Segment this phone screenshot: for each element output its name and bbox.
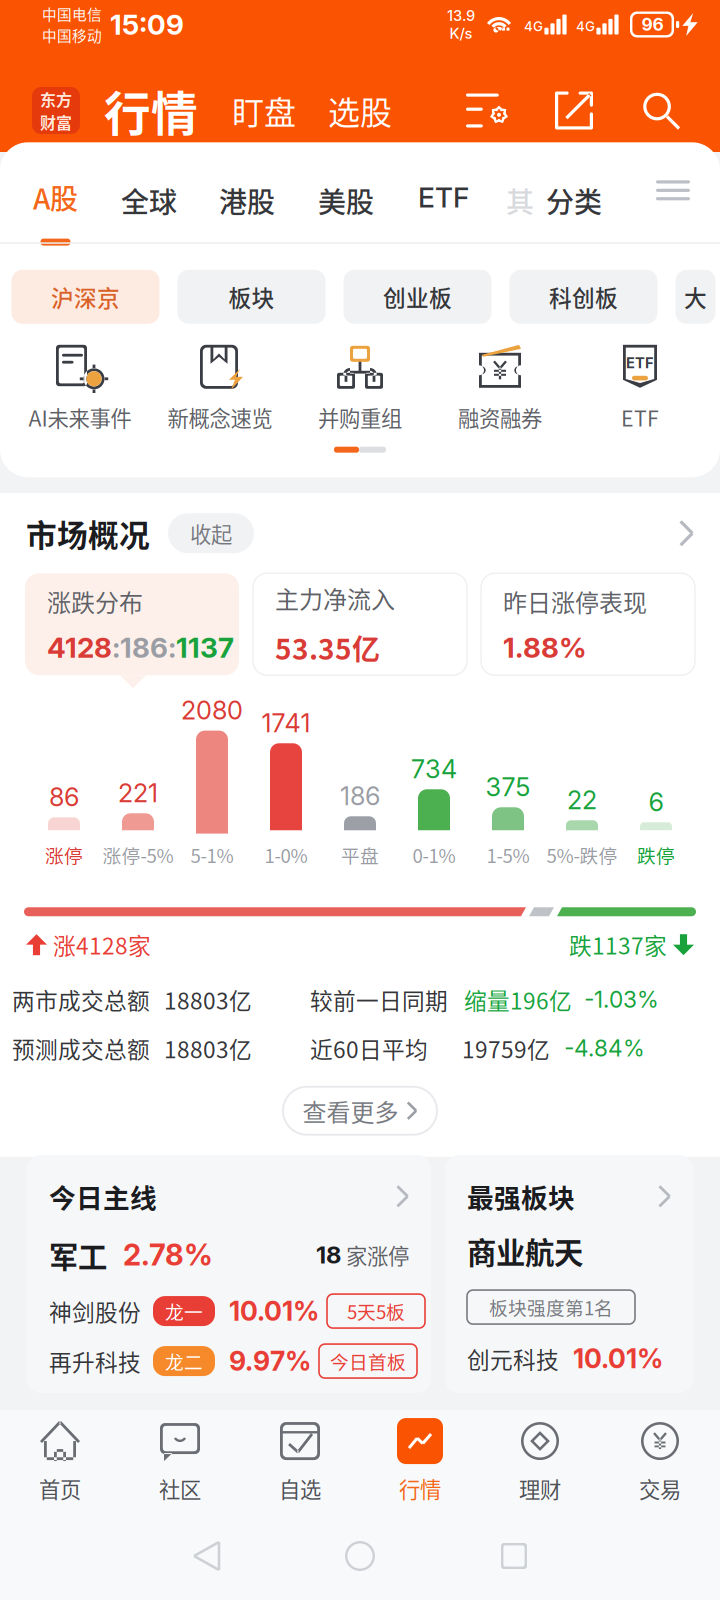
staticText: 6 — [648, 787, 663, 817]
staticText: 首页 — [39, 1473, 81, 1504]
button[interactable]: 融资融券 — [430, 344, 570, 433]
button[interactable]: 全球 — [121, 180, 177, 221]
button[interactable]: 沪深京 — [11, 270, 159, 324]
staticText: 734 — [411, 754, 457, 784]
staticText: 融资融券 — [458, 402, 542, 433]
button[interactable]: A股 — [33, 180, 78, 242]
staticText: 1137 — [176, 631, 234, 665]
button[interactable]: 交易 — [600, 1411, 720, 1511]
staticText: 创业板 — [383, 280, 452, 313]
button[interactable]: 搜索 — [640, 89, 682, 131]
button[interactable]: 返回 — [193, 1542, 219, 1570]
staticText: 5天5板 — [347, 1298, 405, 1325]
button[interactable]: 新概念速览 — [150, 344, 290, 433]
button[interactable]: 社区 — [120, 1411, 240, 1511]
staticText: 1-0% — [264, 841, 307, 868]
staticText: 18 — [316, 1240, 341, 1269]
staticText: 186 — [340, 781, 380, 811]
staticText: 龙二 — [165, 1348, 203, 1375]
button[interactable]: 排序设置 — [466, 92, 508, 128]
staticText: 板块 — [228, 280, 274, 313]
button[interactable]: 分享 — [554, 90, 594, 130]
staticText: 大 — [684, 280, 707, 313]
button[interactable]: 科创板 — [509, 270, 657, 324]
staticText: : — [112, 631, 120, 665]
staticText: ETF — [621, 402, 659, 433]
staticText: 新概念速览 — [167, 402, 272, 433]
staticText: K/s — [449, 24, 472, 42]
staticText: 昨日涨停表现 — [503, 584, 647, 619]
button[interactable]: 主页 — [345, 1541, 375, 1571]
staticText: 0-1% — [412, 841, 455, 868]
button[interactable]: 自选 — [240, 1411, 360, 1511]
button[interactable]: 盯盘 — [232, 87, 296, 134]
staticText: 神剑股份 — [49, 1295, 141, 1327]
button[interactable]: ETF — [418, 180, 469, 214]
staticText: 交易 — [639, 1473, 681, 1504]
button[interactable]: 板块 — [177, 270, 325, 324]
staticText: 沪深京 — [51, 280, 120, 313]
button[interactable]: 并购重组 — [290, 344, 430, 433]
button[interactable]: AI未来事件 — [10, 344, 150, 433]
staticText: 东方 — [40, 87, 72, 110]
staticText: 财富 — [40, 110, 72, 134]
staticText: 19759亿 — [462, 1032, 550, 1065]
staticText: 5-1% — [190, 841, 233, 868]
staticText: 涨跌分布 — [47, 584, 143, 619]
staticText: 社区 — [159, 1473, 201, 1504]
staticText: 86 — [49, 782, 79, 812]
staticText: 港股 — [219, 180, 275, 221]
staticText: 186 — [120, 631, 168, 665]
button[interactable]: 大 — [675, 270, 715, 324]
button[interactable]: 首页 — [0, 1411, 120, 1511]
staticText: 行情 — [399, 1473, 441, 1504]
button[interactable]: 今日主线 — [27, 1155, 431, 1393]
staticText: 13.9 — [447, 7, 475, 24]
button[interactable]: 理财 — [480, 1411, 600, 1511]
staticText: 96 — [641, 14, 663, 35]
button[interactable]: 市场概况 — [0, 493, 720, 573]
staticText: 全球 — [121, 180, 177, 221]
staticText: 板块强度第1名 — [489, 1294, 613, 1321]
staticText: 收起 — [190, 518, 232, 549]
button[interactable]: 美股 — [318, 180, 374, 221]
button[interactable]: ETF — [570, 344, 710, 433]
staticText: 近60日平均 — [310, 1032, 428, 1065]
staticText: 行情 — [104, 77, 198, 144]
staticText: 两市成交总额 — [12, 983, 150, 1016]
staticText: 4G — [576, 18, 595, 34]
staticText: 并购重组 — [318, 402, 402, 433]
button[interactable]: 最强板块 — [445, 1155, 693, 1393]
staticText: 221 — [118, 778, 158, 808]
button[interactable]: 昨日涨停表现 — [481, 573, 695, 675]
staticText: 中国移动 — [42, 24, 102, 46]
staticText: ETF — [418, 180, 469, 214]
button[interactable]: 创业板 — [343, 270, 491, 324]
button[interactable]: 全部分类 — [656, 180, 690, 200]
staticText: 5%-跌停 — [546, 841, 617, 868]
button[interactable]: 选股 — [328, 87, 392, 134]
staticText: 2080 — [181, 695, 243, 726]
staticText: 今日主线 — [49, 1177, 157, 1216]
button[interactable]: 查看更多 — [283, 1087, 437, 1135]
staticText: 创元科技 — [467, 1342, 559, 1375]
button[interactable]: 最近任务 — [501, 1543, 527, 1569]
button[interactable]: 分类 — [546, 180, 602, 221]
staticText: 跌1137家 — [569, 928, 667, 961]
staticText: 商业航天 — [467, 1230, 583, 1272]
staticText: 预测成交总额 — [12, 1032, 150, 1065]
staticText: -1.03% — [584, 986, 659, 1013]
staticText: 10.01% — [573, 1342, 663, 1375]
staticText: : — [168, 631, 176, 665]
staticText: 22 — [567, 785, 597, 815]
staticText: -4.84% — [564, 1035, 645, 1062]
button[interactable]: 港股 — [219, 180, 275, 221]
button[interactable]: 涨跌分布 — [25, 573, 239, 675]
staticText: 再升科技 — [49, 1345, 141, 1377]
staticText: AI未来事件 — [28, 402, 131, 433]
button[interactable]: 主力净流入 — [253, 573, 467, 675]
staticText: 较前一日同期 — [310, 983, 448, 1016]
staticText: 2.78% — [123, 1237, 213, 1273]
staticText: ETF — [626, 354, 654, 372]
button[interactable]: 行情 — [360, 1411, 480, 1511]
